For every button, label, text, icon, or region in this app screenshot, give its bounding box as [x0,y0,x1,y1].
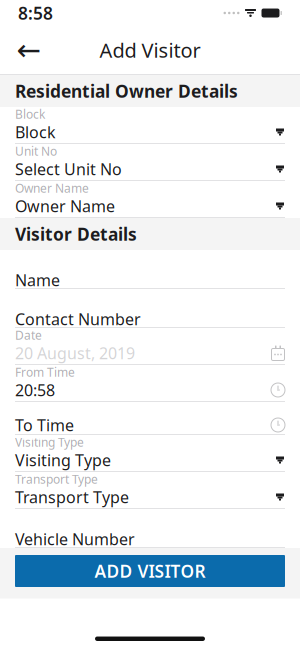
staticText: Select Unit No [15,158,122,180]
button[interactable]: Back [12,33,46,67]
staticText: ADD VISITOR [94,559,205,582]
staticText: To Time [15,414,74,436]
staticText: Owner Name [15,180,89,196]
staticText: Contact Number [15,308,141,330]
staticText: Date [15,327,42,343]
staticText: 20:58 [15,379,55,401]
staticText: Transport Type [15,486,129,508]
button[interactable]: Unit No [0,144,300,181]
button[interactable]: ADD VISITOR [15,555,285,587]
staticText: From Time [15,364,75,380]
staticText: Block [15,106,45,122]
staticText: Residential Owner Details [15,79,238,102]
button[interactable]: Owner Name [0,181,300,218]
staticText: 20 August, 2019 [15,342,135,364]
staticText: Visiting Type [15,434,84,450]
staticText: Unit No [15,143,57,159]
staticText: Add Visitor [99,37,200,63]
staticText: Vehicle Number [15,528,135,550]
button[interactable]: Date [0,328,300,365]
staticText: Transport Type [15,471,98,487]
staticText: Owner Name [15,195,115,217]
button[interactable]: Transport Type [0,472,300,509]
button[interactable]: Name [0,250,300,289]
button[interactable]: From Time [0,365,300,402]
staticText: 8:58 [18,1,53,24]
button[interactable]: To Time [0,402,300,435]
button[interactable]: Vehicle Number [0,509,300,548]
staticText: Name [15,269,60,291]
button[interactable]: Contact Number [0,289,300,328]
button[interactable]: Visiting Type [0,435,300,472]
staticText: Block [15,121,56,143]
staticText: Visiting Type [15,449,111,471]
staticText: Visitor Details [15,222,137,245]
button[interactable]: Block [0,107,300,144]
staticText: ← [16,33,41,67]
